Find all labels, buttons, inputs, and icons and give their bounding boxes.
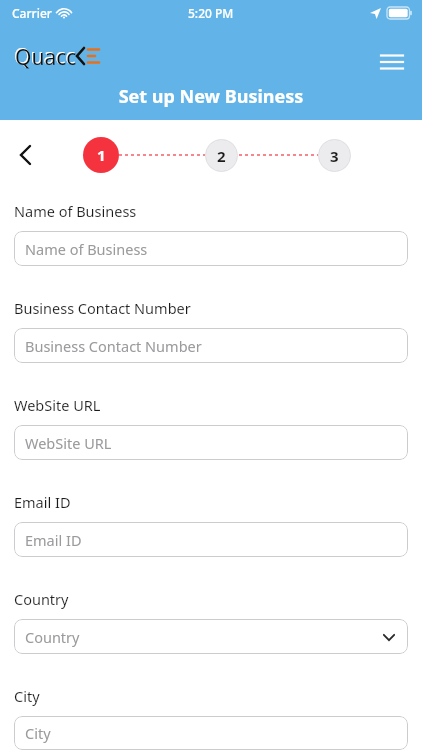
button[interactable]: Back (8, 138, 42, 172)
staticText: Email ID (25, 530, 82, 550)
staticText: Business Contact Number (25, 336, 202, 356)
button[interactable]: 1 (83, 137, 119, 173)
button[interactable]: WebSite URL (14, 425, 408, 460)
staticText: Business Contact Number (14, 298, 191, 318)
staticText: Country (14, 589, 69, 609)
staticText: 2 (217, 146, 226, 166)
staticText: City (25, 723, 51, 743)
button[interactable]: Business Contact Number (14, 328, 408, 363)
staticText: 3 (330, 146, 339, 166)
staticText: Country (25, 627, 80, 647)
staticText: WebSite URL (14, 395, 101, 415)
staticText: Quacc (15, 43, 77, 70)
staticText: Name of Business (25, 239, 148, 259)
button[interactable]: Name of Business (14, 231, 408, 266)
button[interactable]: 3 (318, 139, 351, 172)
staticText: City (14, 686, 40, 706)
staticText: Quacc (14, 42, 76, 70)
staticText: WebSite URL (25, 433, 112, 453)
button[interactable]: City (14, 716, 408, 750)
button[interactable]: Menu (372, 42, 412, 82)
staticText: Name of Business (14, 201, 137, 221)
button[interactable]: Quacc home (14, 42, 110, 70)
button[interactable]: Country (14, 619, 408, 654)
staticText: 5:20 PM (188, 5, 234, 21)
button[interactable]: Email ID (14, 522, 408, 557)
button[interactable]: 2 (205, 139, 238, 172)
staticText: Carrier (12, 5, 52, 21)
staticText: Email ID (14, 492, 71, 512)
staticText: 1 (97, 145, 106, 165)
staticText: Set up New Business (0, 84, 422, 109)
